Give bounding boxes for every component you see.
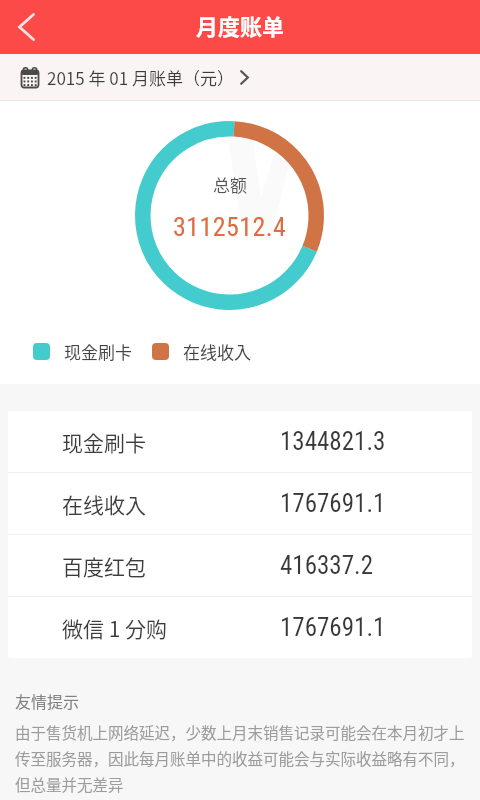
staticText: 月度账单 (196, 9, 285, 41)
staticText: 现金刷卡 (62, 427, 146, 457)
staticText: 微信 1 分购 (62, 613, 168, 643)
button[interactable]: 在线收入 (8, 473, 472, 534)
staticText: 2015 年 01 月账单（元） (47, 65, 235, 90)
staticText: 在线收入 (62, 489, 146, 519)
button[interactable]: 2015 年 01 月账单（元） (0, 54, 480, 101)
button[interactable]: 现金刷卡 (8, 411, 472, 472)
staticText: 在线收入 (183, 339, 251, 364)
staticText: 总额 (213, 172, 247, 197)
staticText: 现金刷卡 (64, 339, 132, 364)
staticText: 友情提示 (15, 689, 80, 712)
staticText: 1767691.1 (280, 489, 386, 518)
staticText: 3112512.4 (173, 212, 287, 242)
staticText: 416337.2 (280, 551, 373, 580)
staticText: 1344821.3 (280, 427, 386, 456)
staticText: 由于售货机上网络延迟，少数上月末销售记录可能会在本月初才上 传至服务器，因此每月… (15, 721, 465, 795)
button[interactable]: 微信 1 分购 (8, 597, 472, 658)
staticText: 百度红包 (62, 551, 146, 581)
staticText: 1767691.1 (280, 613, 386, 642)
button[interactable] (0, 0, 56, 54)
button[interactable]: 百度红包 (8, 535, 472, 596)
